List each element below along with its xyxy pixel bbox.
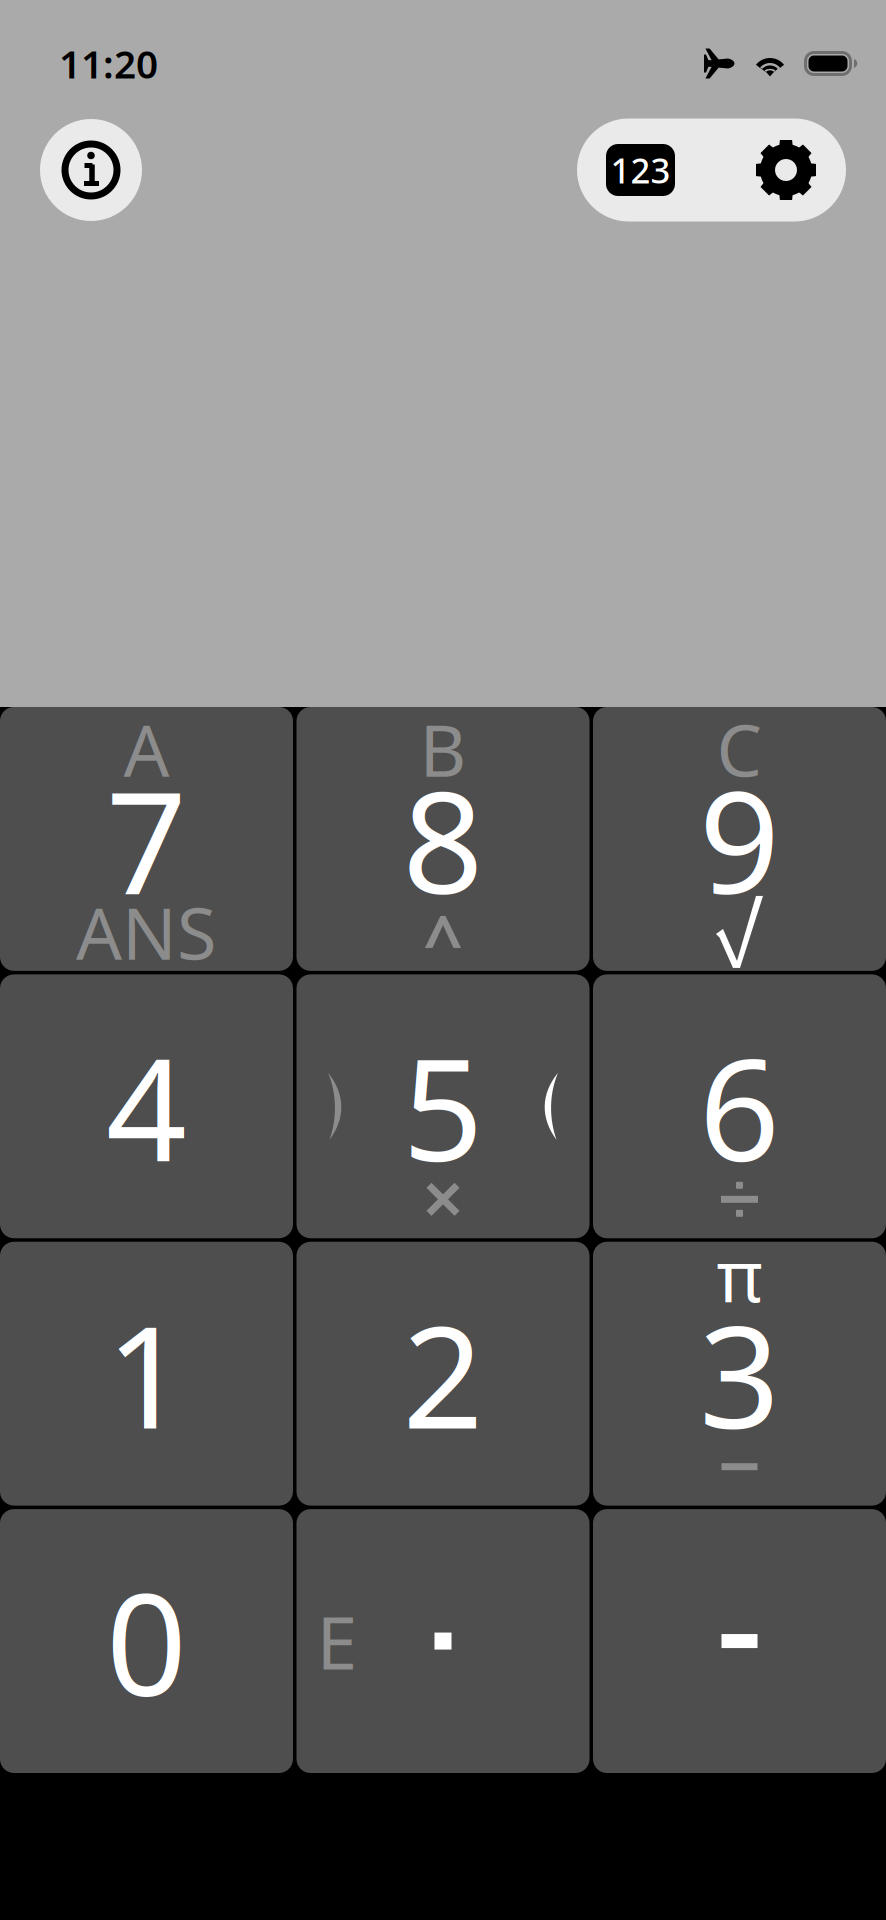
button[interactable]: 0: [0, 1509, 293, 1773]
staticText: A: [123, 701, 169, 797]
staticText: 6: [699, 1012, 780, 1200]
staticText: 7: [106, 745, 187, 933]
staticText: π: [716, 1228, 762, 1322]
staticText: 2: [402, 1280, 483, 1467]
staticText: E: [316, 1592, 357, 1690]
button[interactable]: Settings: [755, 139, 817, 201]
button[interactable]: 7: [0, 707, 293, 971]
staticText: 0: [106, 1547, 187, 1735]
button[interactable]: [296, 1509, 589, 1773]
button[interactable]: Info: [40, 119, 142, 221]
staticText: ANS: [76, 884, 217, 980]
button[interactable]: 4: [0, 974, 293, 1238]
staticText: B: [419, 701, 466, 797]
staticText: C: [716, 701, 762, 797]
staticText: 123: [610, 147, 670, 193]
button[interactable]: 1: [0, 1242, 293, 1506]
button[interactable]: 2: [296, 1242, 589, 1506]
staticText: 3: [699, 1280, 780, 1467]
button[interactable]: 8: [296, 707, 589, 971]
button[interactable]: 6: [593, 974, 886, 1238]
button[interactable]: 5: [296, 974, 589, 1238]
button[interactable]: 9: [593, 707, 886, 971]
staticText: 1: [106, 1280, 187, 1467]
staticText: 8: [402, 745, 483, 933]
staticText: 11:20: [59, 38, 158, 89]
staticText: 9: [699, 745, 780, 933]
staticText: 5: [402, 1012, 483, 1200]
staticText: 4: [106, 1012, 187, 1200]
button[interactable]: Number pad: [606, 144, 675, 196]
button[interactable]: 3: [593, 1242, 886, 1506]
button[interactable]: [593, 1509, 886, 1773]
